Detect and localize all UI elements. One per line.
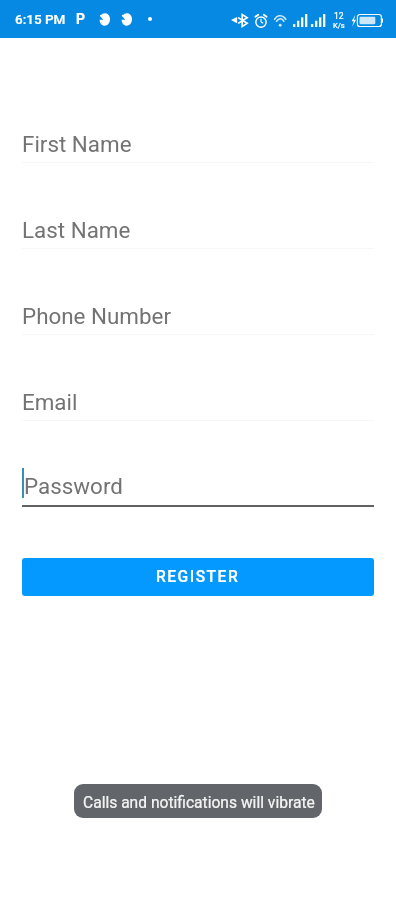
staticText: 12 (334, 11, 344, 21)
staticText: Email (22, 389, 78, 415)
staticText: Calls and notifications will vibrate (83, 794, 315, 812)
staticText: First Name (22, 131, 132, 157)
staticText: K/s (333, 21, 345, 30)
button[interactable]: Phone Number (22, 249, 374, 335)
button[interactable]: First Name (22, 77, 374, 163)
staticText: REGISTER (156, 568, 240, 586)
button[interactable]: REGISTER (22, 558, 374, 596)
staticText: 6:15 PM (15, 11, 66, 27)
button[interactable]: Password (22, 421, 374, 507)
button[interactable]: Email (22, 335, 374, 421)
other: Toast message (74, 784, 322, 818)
staticText: Password (24, 473, 123, 499)
staticText: Last Name (22, 217, 131, 243)
button[interactable]: Last Name (22, 163, 374, 249)
staticText: Phone Number (22, 303, 172, 329)
staticText: P (76, 11, 86, 27)
